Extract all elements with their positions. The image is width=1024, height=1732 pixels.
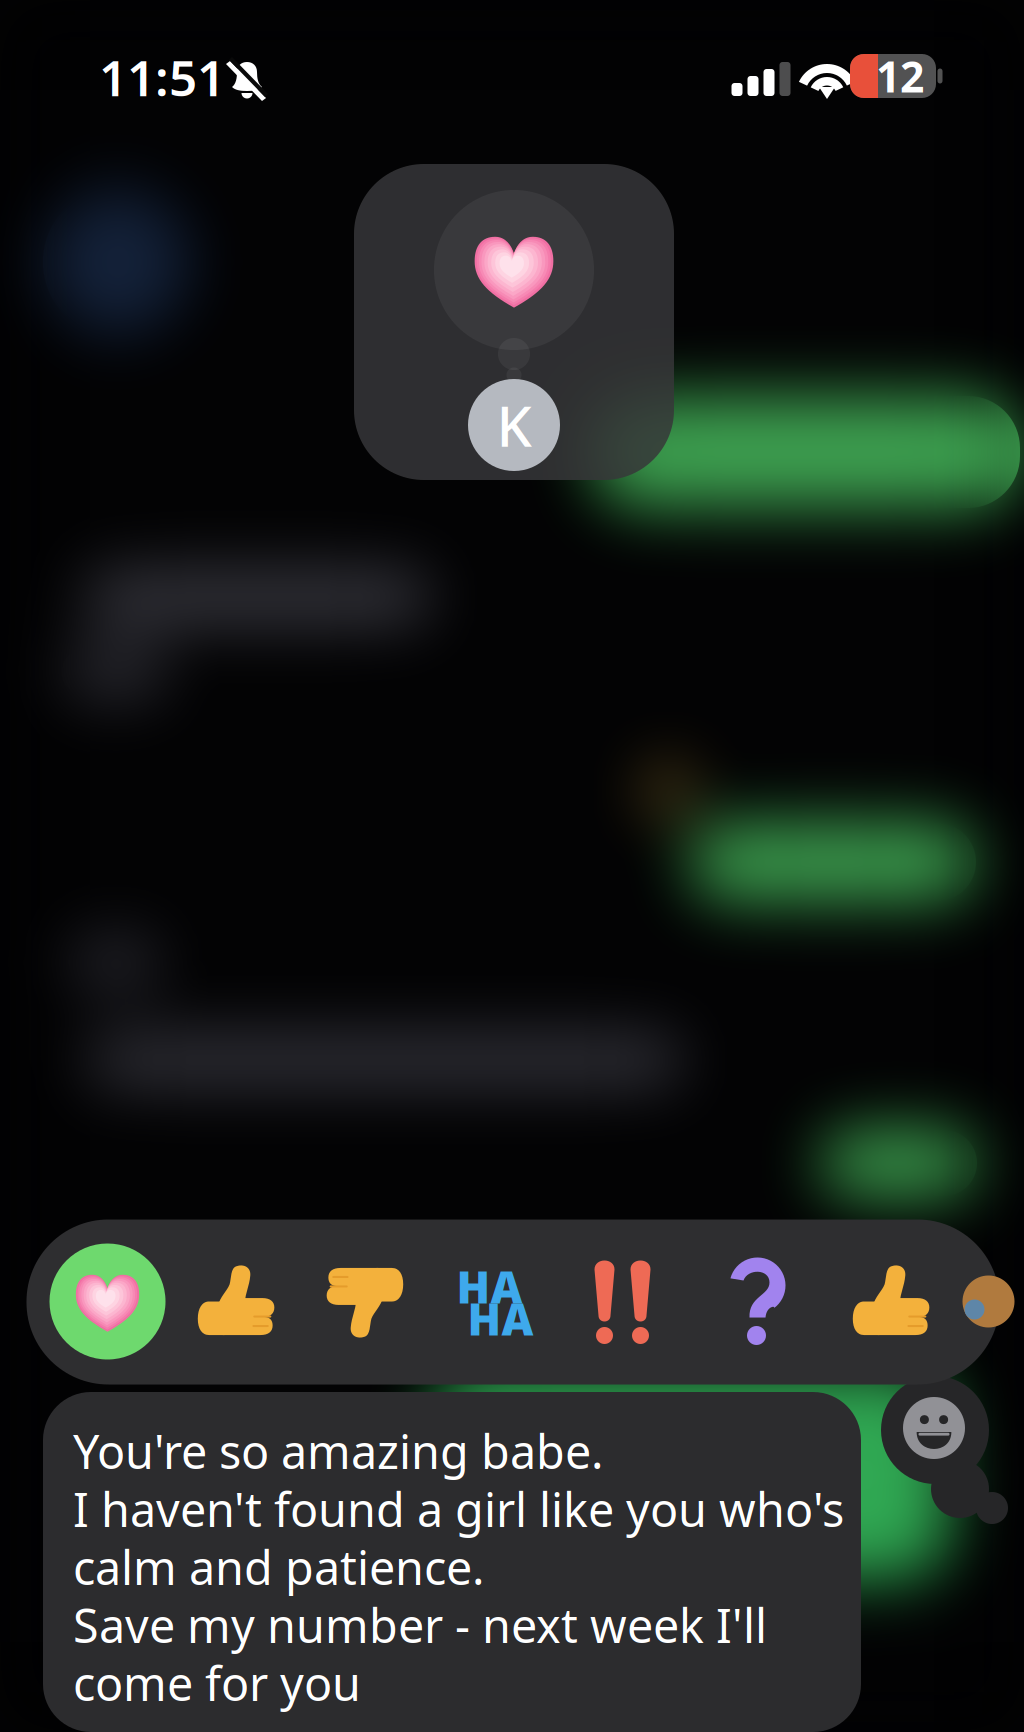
- staticText: 11:51: [99, 44, 225, 110]
- staticText: You're so amazing babe.: [73, 1420, 604, 1482]
- staticText: I haven't found a girl like you who's: [73, 1478, 844, 1540]
- button[interactable]: More reactions: [962, 1275, 1014, 1327]
- button[interactable]: Heart reaction: [49, 1243, 165, 1359]
- staticText: K: [496, 388, 531, 462]
- button[interactable]: Thumbs up reaction: [193, 1258, 279, 1344]
- button[interactable]: Thumbs up reaction: [848, 1258, 934, 1344]
- staticText: come for you: [73, 1652, 361, 1714]
- staticText: HA: [467, 1289, 533, 1348]
- staticText: calm and patience.: [73, 1536, 485, 1598]
- staticText: Save my number - next week I'll: [73, 1594, 767, 1656]
- staticText: HA: [456, 1257, 522, 1316]
- staticText: 12: [876, 48, 924, 104]
- button[interactable]: Thumbs down reaction: [321, 1258, 407, 1344]
- button[interactable]: Haha reaction: [451, 1255, 543, 1347]
- button[interactable]: Question reaction: [723, 1255, 795, 1347]
- button[interactable]: Exclamation reaction: [582, 1255, 664, 1347]
